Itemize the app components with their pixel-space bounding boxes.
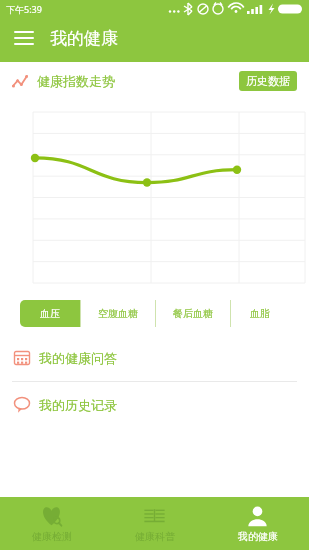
button[interactable]: 健康检测 <box>0 497 103 550</box>
staticText: 健康检测 <box>32 530 72 543</box>
button[interactable]: 我的历史记录 <box>0 382 309 428</box>
staticText: 历史数据 <box>246 74 290 88</box>
button[interactable]: 餐后血糖 <box>155 300 230 327</box>
staticText: 餐后血糖 <box>173 307 213 320</box>
staticText: 我的健康 <box>238 530 278 543</box>
button[interactable]: 历史数据 <box>239 71 297 91</box>
button[interactable]: 血脂 <box>230 300 290 327</box>
button[interactable]: 健康科普 <box>103 497 206 550</box>
button[interactable]: 血压 <box>20 300 80 327</box>
button[interactable]: 我的健康 <box>206 497 309 550</box>
button[interactable]: Menu <box>8 22 40 54</box>
staticText: 我的历史记录 <box>39 397 117 413</box>
staticText: 血脂 <box>250 307 270 320</box>
staticText: 健康科普 <box>135 530 175 543</box>
button[interactable]: 空腹血糖 <box>80 300 155 327</box>
staticText: 我的健康问答 <box>39 350 117 366</box>
staticText: 下午5:39 <box>6 3 42 15</box>
staticText: 健康指数走势 <box>37 73 115 89</box>
staticText: 血压 <box>40 307 60 320</box>
staticText: 空腹血糖 <box>98 307 138 320</box>
staticText: 我的健康 <box>50 28 118 49</box>
button[interactable]: 我的健康问答 <box>0 335 309 381</box>
